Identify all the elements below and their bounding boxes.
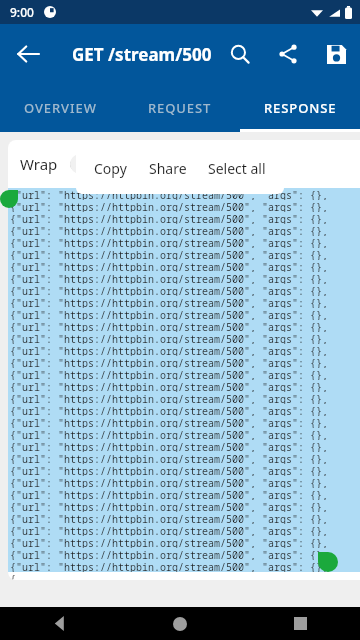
staticText: {"url": "https://httpbin.org/stream/500"… [10,452,360,464]
staticText: {"url": "https://httpbin.org/stream/500"… [10,188,360,200]
staticText: {"url": "https://httpbin.org/stream/500"… [10,212,360,224]
staticText: GET /stream/500 [72,43,212,66]
staticText: OVERVIEW [24,99,97,117]
staticText: {"url": "https://httpbin.org/stream/500"… [10,488,360,500]
staticText: {"url": "https://httpbin.org/stream/500"… [10,308,360,320]
button[interactable]: Wrap [20,140,360,188]
staticText: {"url": "https://httpbin.org/stream/500"… [10,512,360,524]
staticText: {"url": "https://httpbin.org/stream/500"… [10,536,360,548]
staticText: {"url": "https://httpbin.org/stream/500"… [10,404,360,416]
button[interactable]: RESPONSE [240,84,360,132]
staticText: {"url": "https://httpbin.org/stream/500"… [10,440,360,452]
button[interactable]: Back [4,30,52,78]
staticText: {"url": "https://httpbin.org/stream/500"… [10,368,360,380]
staticText: {"url": "https://httpbin.org/stream/500"… [10,236,360,248]
staticText: {"url": "https://httpbin.org/stream/500"… [10,380,360,392]
button[interactable]: Recents [240,607,360,640]
button[interactable]: Home [120,607,240,640]
staticText: {"url": "https://httpbin.org/stream/500"… [10,272,360,284]
button[interactable]: Back [0,607,120,640]
staticText: {"url": "https://httpbin.org/stream/500"… [10,248,360,260]
staticText: {"url": "https://httpbin.org/stream/500"… [10,524,360,536]
other: Selection start handle [0,190,18,208]
staticText: Wrap [20,154,58,174]
other: Selection end handle [318,552,338,572]
staticText: {"url": "https://httpbin.org/stream/500"… [10,392,360,404]
button[interactable]: Select all [204,153,270,184]
staticText: Copy [94,159,127,178]
button[interactable]: OVERVIEW [0,84,120,132]
staticText: {"url": "https://httpbin.org/stream/500"… [10,260,360,272]
staticText: Share [149,159,187,178]
staticText: RESPONSE [264,99,337,117]
staticText: { [10,572,16,580]
staticText: {"url": "https://httpbin.org/stream/500"… [10,200,360,212]
button[interactable]: Copy [90,153,131,184]
staticText: {"url": "https://httpbin.org/stream/500"… [10,296,360,308]
staticText: {"url": "https://httpbin.org/stream/500"… [10,224,360,236]
staticText: Select all [208,159,266,178]
staticText: 9:00 [10,4,34,20]
staticText: {"url": "https://httpbin.org/stream/500"… [10,320,360,332]
staticText: {"url": "https://httpbin.org/stream/500"… [10,548,360,560]
button[interactable]: Save [312,30,360,78]
staticText: {"url": "https://httpbin.org/stream/500"… [10,560,360,572]
staticText: {"url": "https://httpbin.org/stream/500"… [10,476,360,488]
staticText: {"url": "https://httpbin.org/stream/500"… [10,284,360,296]
button[interactable]: Share [145,153,191,184]
staticText: {"url": "https://httpbin.org/stream/500"… [10,464,360,476]
staticText: {"url": "https://httpbin.org/stream/500"… [10,332,360,344]
staticText: {"url": "https://httpbin.org/stream/500"… [10,500,360,512]
staticText: {"url": "https://httpbin.org/stream/500"… [10,428,360,440]
staticText: REQUEST [148,99,212,117]
staticText: {"url": "https://httpbin.org/stream/500"… [10,416,360,428]
button[interactable]: Search [216,30,264,78]
staticText: {"url": "https://httpbin.org/stream/500"… [10,344,360,356]
staticText: {"url": "https://httpbin.org/stream/500"… [10,356,360,368]
button[interactable]: Share [264,30,312,78]
button[interactable]: REQUEST [120,84,240,132]
